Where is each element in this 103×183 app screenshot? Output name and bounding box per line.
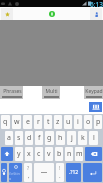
- button[interactable]: x: [25, 147, 33, 161]
- staticText: v: [47, 149, 51, 159]
- button[interactable]: ?: [24, 163, 32, 182]
- staticText: !: [59, 165, 61, 172]
- button[interactable]: s: [15, 131, 23, 145]
- staticText: p: [96, 117, 101, 127]
- staticText: d: [27, 133, 32, 143]
- button[interactable]: Phrases: [0, 86, 23, 99]
- button[interactable]: Language: [9, 163, 22, 182]
- button[interactable]: Contacts: [90, 8, 102, 20]
- staticText: b: [57, 149, 62, 159]
- button[interactable]: k: [78, 131, 87, 145]
- staticText: w: [14, 117, 20, 127]
- button[interactable]: g: [45, 131, 54, 145]
- button[interactable]: Backspace: [85, 147, 102, 161]
- staticText: j: [71, 133, 73, 143]
- button[interactable]: Shift: [1, 147, 13, 161]
- staticText: ,: [28, 172, 30, 180]
- staticText: q: [3, 117, 8, 127]
- staticText: Phrases: [3, 88, 22, 95]
- button[interactable]: y: [15, 147, 23, 161]
- staticText: f: [38, 133, 41, 143]
- staticText: t: [47, 117, 50, 127]
- staticText: s: [17, 133, 21, 143]
- staticText: u: [66, 117, 71, 127]
- staticText: k: [81, 133, 85, 143]
- staticText: y: [17, 149, 21, 159]
- staticText: e: [26, 117, 30, 127]
- button[interactable]: l: [89, 131, 98, 145]
- button[interactable]: [34, 163, 54, 182]
- button[interactable]: Dictionary: [89, 102, 102, 112]
- button[interactable]: f: [35, 131, 43, 145]
- staticText: .: [59, 172, 61, 180]
- button[interactable]: Keypad: [84, 86, 103, 99]
- staticText: o: [86, 117, 91, 127]
- button[interactable]: a: [5, 131, 13, 145]
- staticText: a: [7, 133, 11, 143]
- button[interactable]: e: [23, 115, 32, 129]
- button[interactable]: o: [84, 115, 92, 129]
- staticText: Keypad: [85, 88, 103, 95]
- button[interactable]: d: [25, 131, 33, 145]
- button[interactable]: z: [54, 115, 62, 129]
- button[interactable]: u: [64, 115, 72, 129]
- button[interactable]: j: [67, 131, 76, 145]
- button[interactable]: Favorites: [1, 8, 13, 20]
- staticText: čeština: [9, 171, 22, 181]
- button[interactable]: b: [55, 147, 63, 161]
- staticText: c: [37, 149, 41, 159]
- button[interactable]: t: [44, 115, 52, 129]
- button[interactable]: Multi: [42, 86, 60, 99]
- staticText: l: [93, 133, 95, 143]
- button[interactable]: Enter: [83, 163, 102, 182]
- button[interactable]: !: [56, 163, 64, 182]
- button[interactable]: h: [56, 131, 65, 145]
- button[interactable]: Settings: [1, 163, 7, 182]
- staticText: 6:13: [90, 0, 103, 7]
- button[interactable]: w: [12, 115, 21, 129]
- button[interactable]: m: [75, 147, 83, 161]
- staticText: m: [76, 149, 83, 159]
- staticText: Multi: [45, 88, 58, 95]
- button[interactable]: v: [45, 147, 53, 161]
- button[interactable]: Symbols: [66, 163, 81, 182]
- staticText: r: [37, 117, 40, 127]
- button[interactable]: Recording: [48, 10, 56, 18]
- button[interactable]: r: [34, 115, 42, 129]
- button[interactable]: c: [35, 147, 43, 161]
- button[interactable]: p: [94, 115, 102, 129]
- staticText: h: [58, 133, 63, 143]
- staticText: n: [67, 149, 72, 159]
- staticText: g: [47, 133, 52, 143]
- staticText: ?: [27, 165, 30, 172]
- staticText: x: [27, 149, 31, 159]
- staticText: .?12: [69, 169, 79, 176]
- button[interactable]: q: [1, 115, 10, 129]
- button[interactable]: n: [65, 147, 73, 161]
- staticText: i: [77, 117, 79, 127]
- staticText: z: [56, 117, 60, 127]
- button[interactable]: i: [74, 115, 82, 129]
